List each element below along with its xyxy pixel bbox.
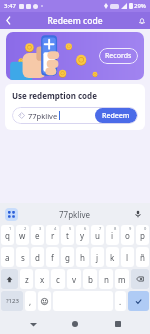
staticText: 0 <box>144 226 147 231</box>
button[interactable]: s <box>16 247 29 267</box>
button[interactable]: h <box>76 247 89 267</box>
staticText: j <box>96 252 99 263</box>
button[interactable]: g <box>61 247 74 267</box>
button[interactable]: w <box>16 225 29 245</box>
staticText: s <box>21 252 25 263</box>
button[interactable]: 77pklive <box>12 107 138 124</box>
button[interactable]: p <box>136 225 149 245</box>
button[interactable]: Shift <box>1 269 18 289</box>
button[interactable]: Redeem <box>95 108 137 123</box>
staticText: b <box>88 274 93 285</box>
staticText: 6 <box>84 226 87 231</box>
button[interactable]: . <box>115 291 126 311</box>
staticText: Use redemption code <box>12 90 97 101</box>
staticText: l <box>126 252 129 263</box>
staticText: 2 <box>24 226 27 231</box>
staticText: k <box>110 252 115 263</box>
staticText: t <box>66 230 69 241</box>
staticText: Redeem code <box>47 15 103 27</box>
button[interactable]: Notifications <box>133 12 150 29</box>
button[interactable]: z <box>20 269 33 289</box>
staticText: n <box>104 274 109 285</box>
button[interactable]: e <box>31 225 44 245</box>
button[interactable]: Hide keyboard <box>23 314 43 334</box>
button[interactable]: Enter <box>128 291 149 311</box>
staticText: a <box>5 252 10 263</box>
staticText: Redeem <box>102 111 130 121</box>
button[interactable]: Voice input <box>132 208 144 220</box>
staticText: d <box>35 252 40 263</box>
button[interactable]: q <box>1 225 14 245</box>
staticText: x <box>40 274 45 285</box>
staticText: , <box>29 296 32 307</box>
button[interactable]: j <box>91 247 104 267</box>
button[interactable]: y <box>76 225 89 245</box>
button[interactable]: b <box>83 269 97 289</box>
staticText: h <box>80 252 85 263</box>
staticText: ?123 <box>6 297 19 305</box>
button[interactable]: Keyboard options <box>5 208 18 221</box>
staticText: p <box>140 230 145 241</box>
button[interactable]: Records <box>99 48 138 64</box>
button[interactable]: a <box>1 247 14 267</box>
button[interactable]: c <box>51 269 65 289</box>
button[interactable]: d <box>31 247 44 267</box>
staticText: q <box>5 230 10 241</box>
button[interactable]: l <box>121 247 134 267</box>
button[interactable]: Backspace <box>131 269 149 289</box>
staticText: e <box>35 230 40 241</box>
button[interactable]: v <box>67 269 81 289</box>
button[interactable]: f <box>46 247 59 267</box>
button[interactable]: x <box>35 269 49 289</box>
button[interactable]: r <box>46 225 59 245</box>
button[interactable]: Emoji <box>38 291 51 311</box>
button[interactable]: k <box>106 247 119 267</box>
staticText: 1 <box>9 226 12 231</box>
staticText: 3:47 <box>4 2 16 10</box>
button[interactable]: , <box>25 291 36 311</box>
staticText: z <box>25 274 29 285</box>
staticText: 8 <box>114 226 117 231</box>
staticText: i <box>111 230 114 241</box>
staticText: Records <box>105 51 132 61</box>
staticText: 4 <box>54 226 57 231</box>
staticText: v <box>72 274 77 285</box>
staticText: 77pklive <box>28 111 58 121</box>
button[interactable]: o <box>121 225 134 245</box>
button[interactable]: ñ <box>136 247 149 267</box>
staticText: ñ <box>140 252 145 263</box>
staticText: 9 <box>129 226 132 231</box>
staticText: 7 <box>99 226 102 231</box>
staticText: 5 <box>69 226 72 231</box>
staticText: 3 <box>39 226 42 231</box>
button[interactable]: n <box>99 269 113 289</box>
staticText: c <box>56 274 60 285</box>
staticText: y <box>80 230 85 241</box>
button[interactable]: 77pklive <box>59 209 91 220</box>
button[interactable]: m <box>115 269 129 289</box>
staticText: w <box>19 230 26 241</box>
staticText: 29% <box>134 2 146 10</box>
button[interactable]: u <box>91 225 104 245</box>
button[interactable]: Home <box>65 314 85 334</box>
button[interactable]: Recent apps <box>108 314 128 334</box>
staticText: o <box>125 230 130 241</box>
staticText: f <box>51 252 54 263</box>
button[interactable]: Back <box>0 12 17 29</box>
staticText: r <box>51 230 55 241</box>
staticText: g <box>65 252 70 263</box>
button[interactable]: ?123 <box>1 291 23 311</box>
staticText: . <box>119 296 122 307</box>
button[interactable]: i <box>106 225 119 245</box>
staticText: m <box>118 274 126 285</box>
button[interactable]: t <box>61 225 74 245</box>
staticText: u <box>95 230 100 241</box>
